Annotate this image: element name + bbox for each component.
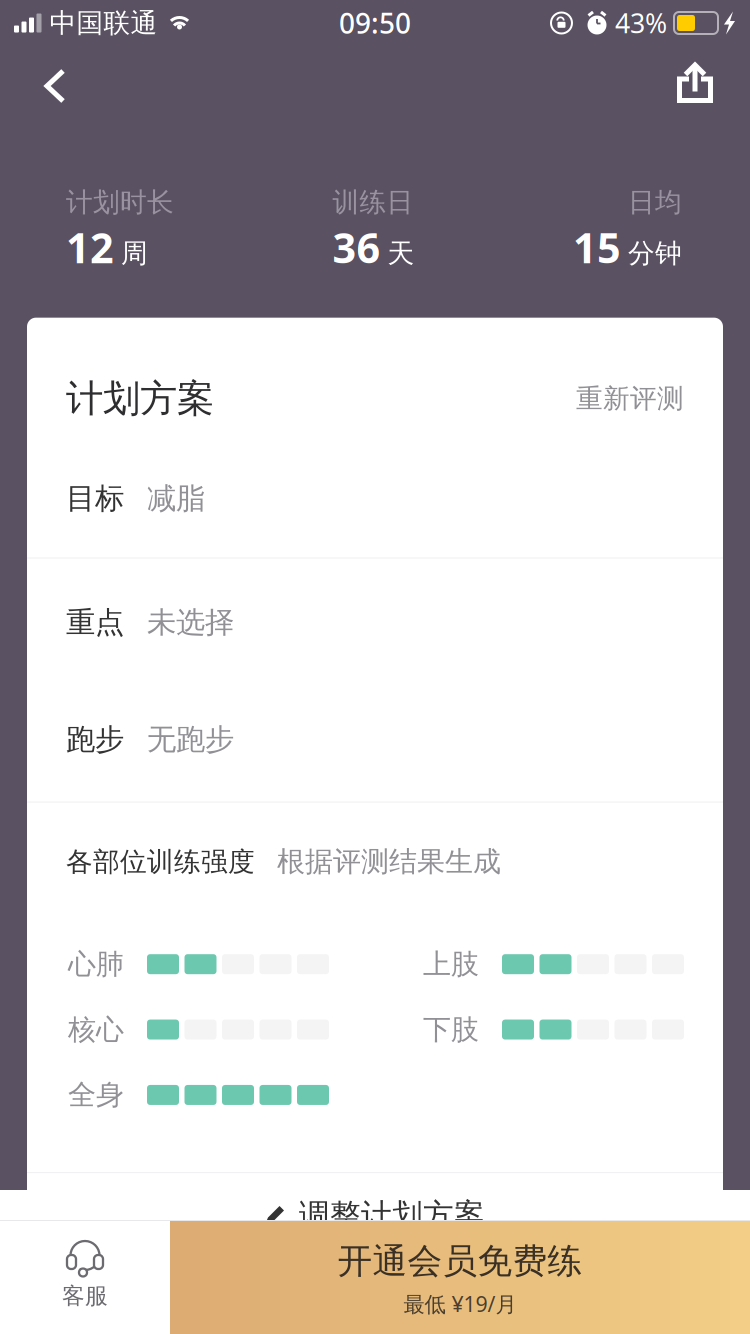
- staticText: 核心: [68, 1012, 124, 1047]
- staticText: 下肢: [423, 1012, 479, 1047]
- staticText: 无跑步: [147, 722, 234, 758]
- staticText: 12: [66, 220, 114, 275]
- button[interactable]: 重新评测: [535, 376, 684, 421]
- staticText: 重点: [66, 604, 124, 640]
- staticText: 未选择: [147, 604, 234, 640]
- staticText: 最低 ¥19/月: [403, 1290, 516, 1318]
- staticText: 重新评测: [576, 382, 684, 415]
- button[interactable]: 返回: [17, 46, 93, 126]
- staticText: 各部位训练强度: [66, 845, 255, 878]
- staticText: 计划时长: [66, 186, 174, 219]
- staticText: 09:50: [339, 4, 411, 42]
- button[interactable]: 客服: [0, 1220, 170, 1334]
- staticText: 根据评测结果生成: [277, 845, 501, 879]
- staticText: 开通会员免费练: [337, 1240, 582, 1283]
- staticText: 43%: [608, 5, 667, 41]
- staticText: 训练日: [332, 186, 413, 219]
- staticText: 减脂: [147, 480, 205, 516]
- button[interactable]: 开通会员免费练: [170, 1220, 750, 1334]
- button[interactable]: 分享: [657, 43, 733, 129]
- staticText: 日均: [628, 186, 682, 219]
- staticText: 周: [121, 237, 148, 270]
- staticText: 上肢: [423, 947, 479, 981]
- staticText: 36: [332, 220, 380, 275]
- staticText: 中国联通: [41, 7, 157, 39]
- staticText: 心肺: [68, 947, 124, 981]
- staticText: 客服: [62, 1282, 108, 1310]
- button[interactable]: 调整计划方案: [27, 1173, 723, 1263]
- staticText: 目标: [66, 480, 124, 516]
- staticText: 天: [387, 237, 414, 270]
- staticText: 15: [573, 220, 621, 275]
- staticText: 计划方案: [66, 376, 214, 421]
- staticText: 调整计划方案: [299, 1196, 485, 1234]
- staticText: 分钟: [628, 237, 682, 270]
- staticText: 全身: [68, 1078, 124, 1112]
- staticText: 跑步: [66, 722, 124, 758]
